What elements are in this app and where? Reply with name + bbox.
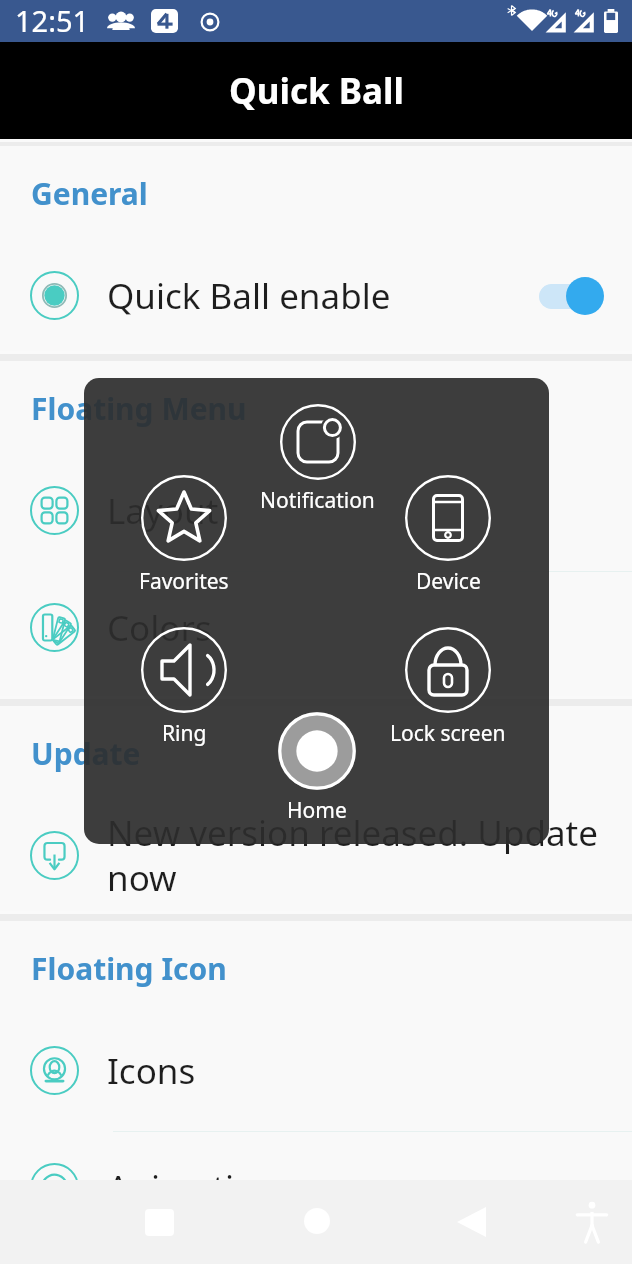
staticText: Icons [107, 1047, 626, 1095]
staticText: Ring [162, 719, 207, 748]
staticText: 12:51 [15, 1, 90, 40]
button[interactable] [539, 270, 604, 322]
button[interactable]: Recents [120, 1180, 198, 1264]
button[interactable]: Icons [0, 1015, 632, 1126]
staticText: Floating Menu [31, 388, 247, 429]
staticText: Quick Ball [229, 67, 404, 115]
button[interactable]: Home [278, 712, 356, 790]
staticText: Animation [107, 1164, 626, 1212]
staticText: Favorites [139, 567, 229, 596]
button[interactable]: Home [278, 1180, 356, 1264]
staticText: Update [31, 733, 141, 774]
staticText: General [31, 173, 148, 214]
staticText: New version released. Update now [107, 809, 626, 902]
staticText: Device [416, 567, 481, 596]
button[interactable]: Ring [94, 627, 274, 748]
staticText: Notification [260, 486, 375, 515]
staticText: Layout [107, 487, 626, 535]
button[interactable]: Favorites [94, 475, 274, 596]
button[interactable]: Quick Ball enable [0, 240, 632, 351]
button[interactable]: Back [432, 1180, 510, 1264]
button[interactable]: Layout [0, 455, 632, 566]
button[interactable]: Notification [227, 404, 407, 515]
staticText: Floating Icon [31, 948, 227, 989]
button[interactable]: Device [358, 475, 538, 596]
button[interactable]: Lock screen [358, 627, 538, 748]
staticText: Home [287, 796, 347, 825]
button[interactable]: Animation [0, 1132, 632, 1243]
staticText: Lock screen [390, 719, 506, 748]
staticText: Quick Ball enable [107, 272, 527, 320]
button[interactable]: Colors [0, 572, 632, 683]
button[interactable]: New version released. Update now [0, 800, 632, 911]
staticText: Colors [107, 604, 626, 652]
